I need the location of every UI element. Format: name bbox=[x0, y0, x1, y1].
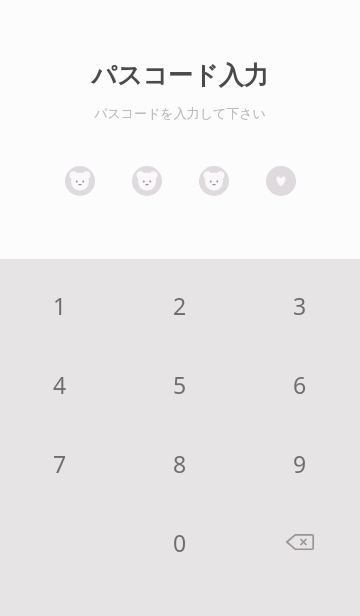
button[interactable]: 9 bbox=[240, 443, 360, 483]
button[interactable]: 0 bbox=[120, 522, 240, 562]
button[interactable]: Backspace bbox=[240, 522, 360, 562]
button[interactable]: 7 bbox=[0, 443, 120, 483]
staticText: 1 bbox=[53, 290, 67, 321]
staticText: 8 bbox=[173, 448, 187, 479]
staticText: 3 bbox=[293, 290, 307, 321]
button[interactable]: 3 bbox=[240, 285, 360, 325]
button[interactable]: 1 bbox=[0, 285, 120, 325]
staticText: 7 bbox=[53, 448, 67, 479]
staticText: パスコード入力 bbox=[91, 60, 269, 91]
staticText: 6 bbox=[293, 369, 307, 400]
staticText: 5 bbox=[173, 369, 187, 400]
staticText: 2 bbox=[173, 290, 187, 321]
button[interactable]: 4 bbox=[0, 364, 120, 404]
button[interactable]: 2 bbox=[120, 285, 240, 325]
staticText: パスコードを入力して下さい bbox=[94, 105, 266, 121]
button[interactable]: 8 bbox=[120, 443, 240, 483]
staticText: 0 bbox=[173, 527, 187, 558]
button[interactable]: 6 bbox=[240, 364, 360, 404]
staticText: 4 bbox=[53, 369, 67, 400]
staticText: 9 bbox=[293, 448, 307, 479]
button[interactable]: 5 bbox=[120, 364, 240, 404]
